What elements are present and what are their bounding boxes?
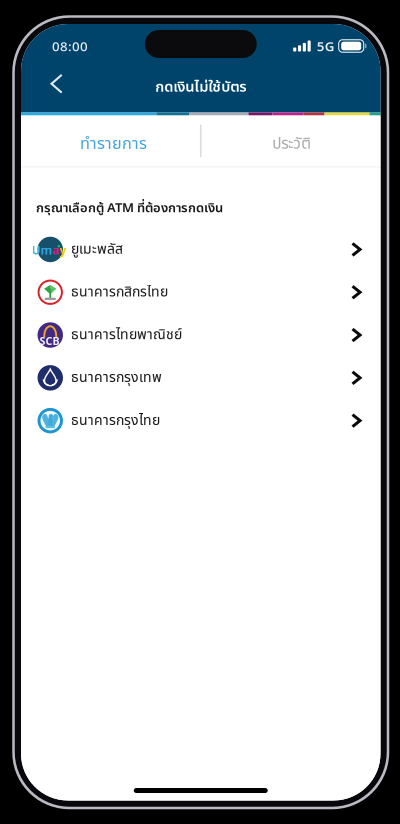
staticText: ธนาคารไทยพาณิชย์ <box>71 324 182 346</box>
button[interactable]: SCB <box>21 314 380 356</box>
staticText: กรุณาเลือกตู้ ATM ที่ต้องการกดเงิน <box>36 198 223 218</box>
staticText: U <box>32 242 41 258</box>
button[interactable]: ธนาคารกรุงไทย <box>21 399 380 442</box>
staticText: ประวัติ <box>272 132 311 156</box>
staticText: ทำรายการ <box>80 132 147 156</box>
staticText: 08:00 <box>52 37 88 55</box>
staticText: 5G <box>317 37 335 55</box>
staticText: ยูเมะพลัส <box>71 239 123 260</box>
staticText: a <box>52 242 59 258</box>
button[interactable]: Back <box>21 70 82 110</box>
staticText: ธนาคารกรุงเทพ <box>71 367 162 388</box>
button[interactable]: U <box>21 228 380 271</box>
staticText: y <box>59 242 66 258</box>
staticText: ธนาคารกรุงไทย <box>71 410 160 431</box>
button[interactable]: ธนาคารกรุงเทพ <box>21 356 380 399</box>
button[interactable]: ทำรายการ <box>21 115 201 166</box>
button[interactable]: ประวัติ <box>201 115 381 166</box>
staticText: กดเงินไม่ใช้บัตร <box>155 76 246 98</box>
button[interactable]: ธนาคารกสิกรไทย <box>21 271 380 314</box>
staticText: SCB <box>39 334 59 348</box>
staticText: ธนาคารกสิกรไทย <box>71 282 168 303</box>
staticText: m <box>40 242 52 258</box>
